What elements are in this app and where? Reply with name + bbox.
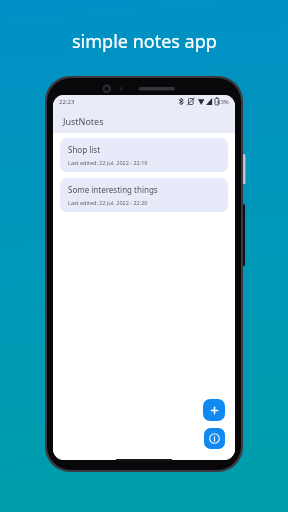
staticText: 63% [217, 98, 229, 106]
staticText: Shop list [68, 144, 101, 155]
button[interactable]: Add note [203, 399, 225, 421]
button[interactable]: Some interesting things [60, 178, 228, 212]
staticText: Last edited: 22 Jul, 2022 - 22:20 [68, 199, 148, 206]
staticText: JustNotes [63, 115, 104, 127]
staticText: simple notes app [72, 29, 217, 54]
staticText: Some interesting things [68, 184, 158, 195]
button[interactable]: Shop list [60, 138, 228, 172]
button[interactable]: About [204, 428, 225, 449]
staticText: 22:23 [59, 98, 75, 106]
staticText: Last edited: 22 Jul, 2022 - 22:19 [68, 159, 148, 166]
